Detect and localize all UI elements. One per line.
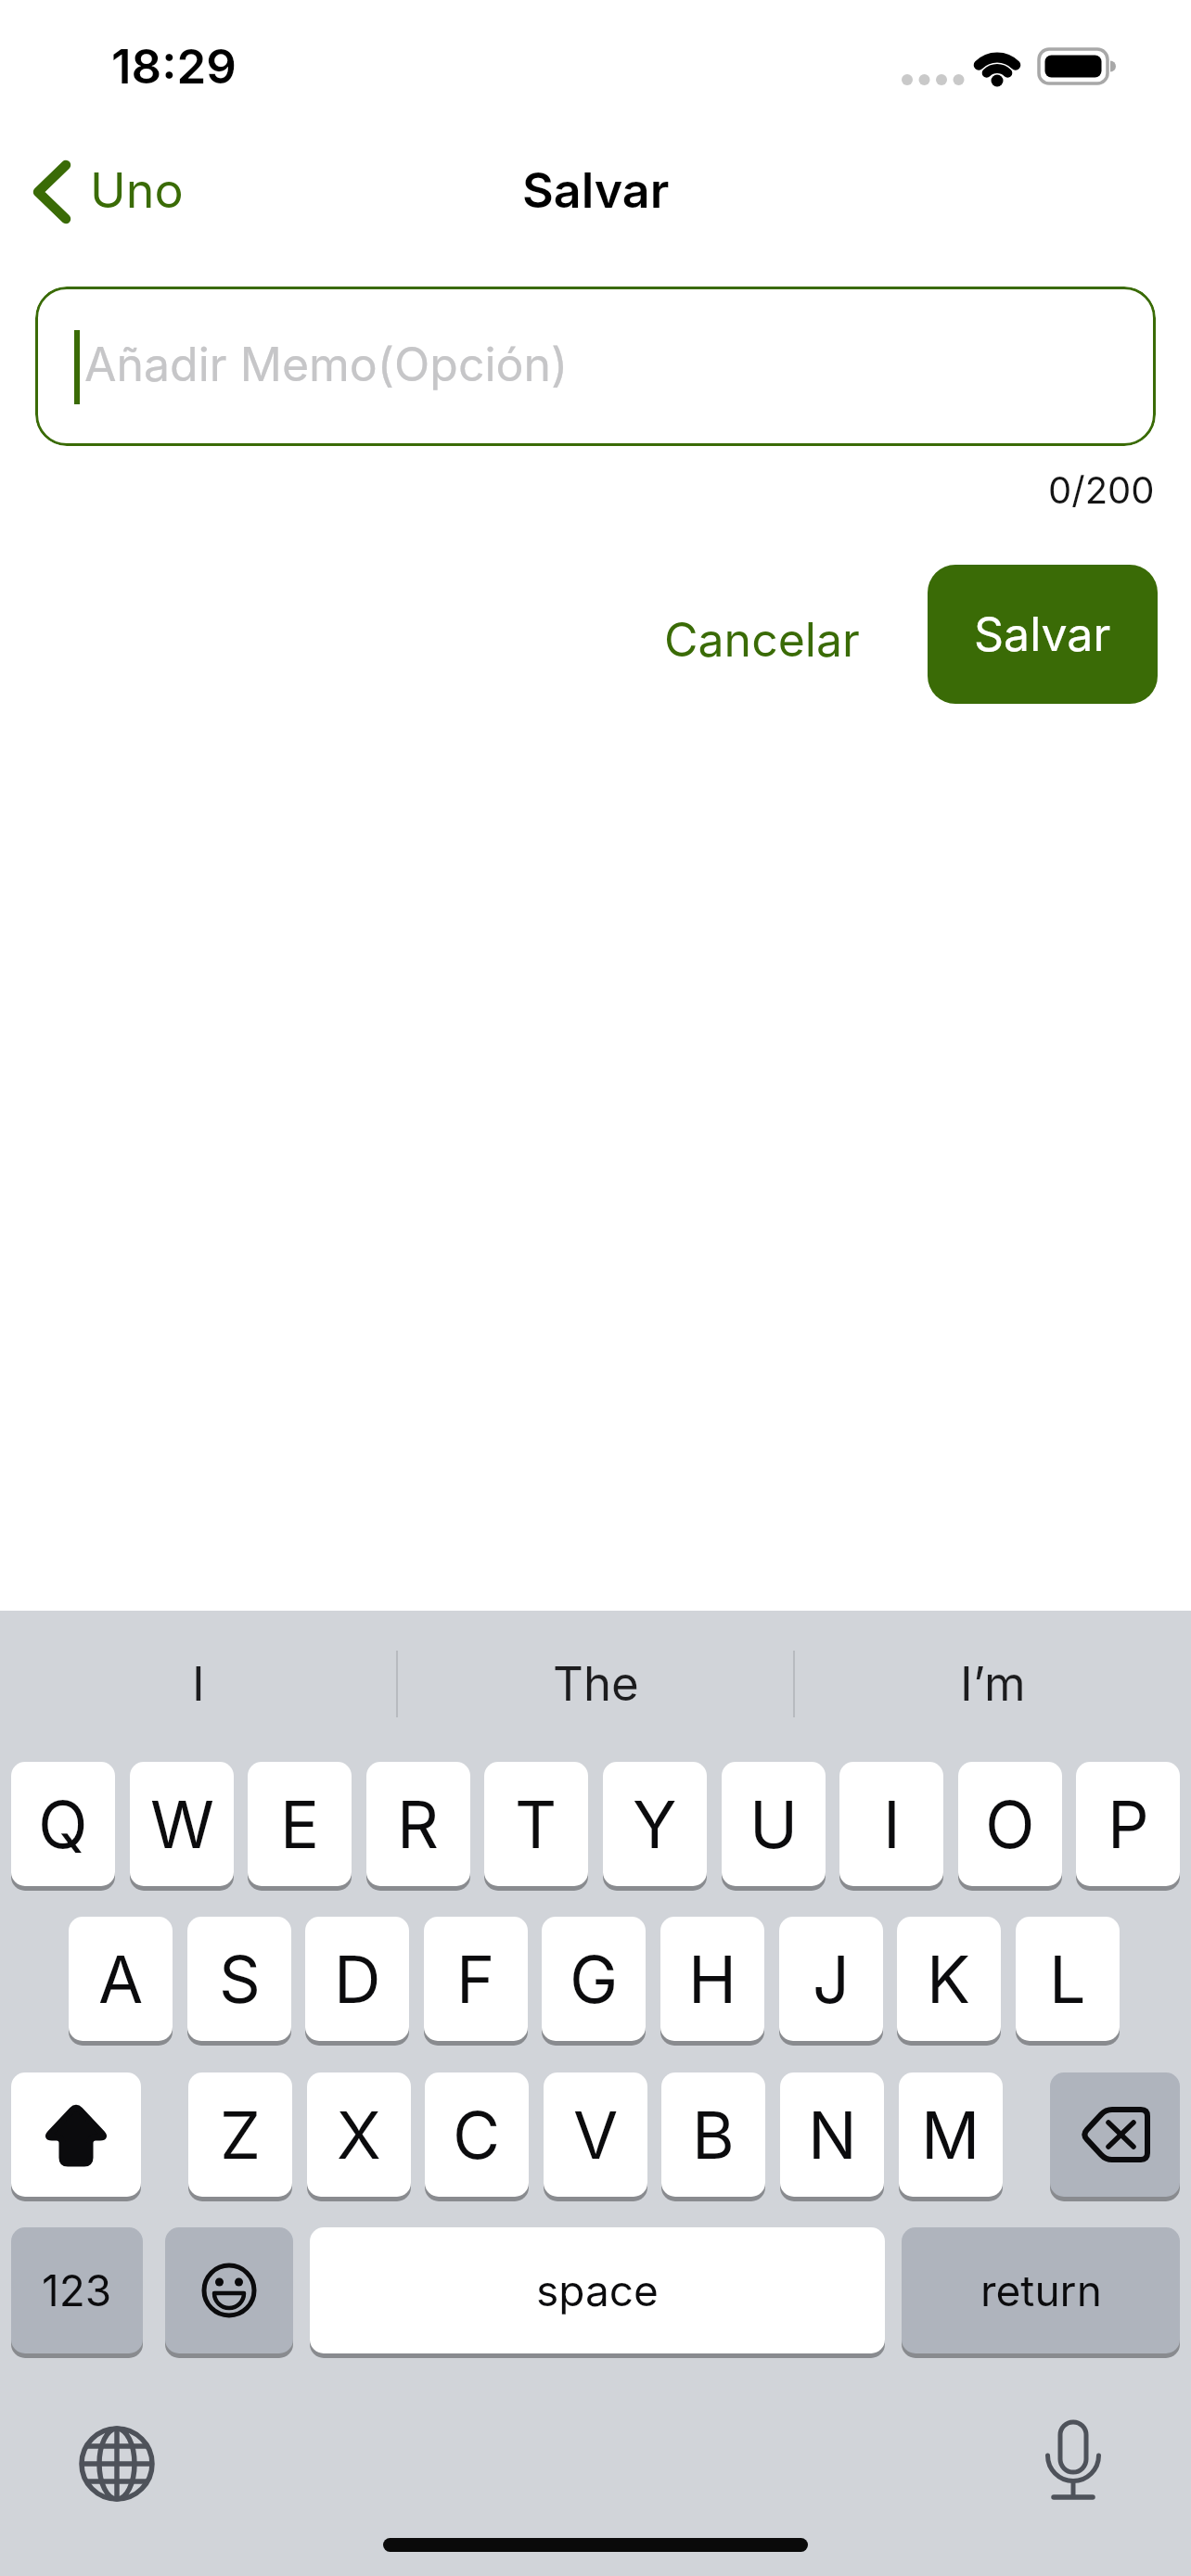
button[interactable]: N xyxy=(780,2072,884,2197)
staticText: Uno xyxy=(90,161,184,220)
button[interactable]: D xyxy=(305,1917,409,2041)
button[interactable]: I’m xyxy=(794,1651,1191,1716)
button[interactable]: Y xyxy=(603,1762,707,1886)
staticText: 18:29 xyxy=(111,38,237,96)
staticText: Cancelar xyxy=(664,612,860,668)
button[interactable] xyxy=(1050,2072,1180,2197)
button[interactable] xyxy=(11,2072,141,2197)
staticText: G xyxy=(570,1940,619,2019)
staticText: X xyxy=(337,2096,381,2174)
staticText: The xyxy=(553,1655,639,1713)
staticText: 0/200 xyxy=(1048,467,1155,512)
button[interactable]: X xyxy=(307,2072,411,2197)
button[interactable]: W xyxy=(130,1762,234,1886)
staticText: F xyxy=(456,1940,495,2019)
staticText: N xyxy=(808,2096,857,2174)
button[interactable]: G xyxy=(542,1917,646,2041)
staticText: U xyxy=(749,1785,799,1864)
staticText: J xyxy=(813,1940,850,2019)
staticText: K xyxy=(927,1940,971,2019)
button[interactable] xyxy=(35,287,1156,446)
button[interactable]: space xyxy=(310,2227,885,2353)
button[interactable]: A xyxy=(69,1917,173,2041)
staticText: I’m xyxy=(960,1655,1026,1713)
button[interactable] xyxy=(165,2227,293,2353)
button[interactable]: K xyxy=(897,1917,1001,2041)
staticText: A xyxy=(98,1940,144,2019)
button[interactable]: Salvar xyxy=(928,565,1158,704)
staticText: R xyxy=(397,1785,440,1864)
staticText: Salvar xyxy=(522,161,670,220)
staticText: Y xyxy=(633,1785,677,1864)
staticText: W xyxy=(150,1785,214,1864)
button[interactable]: return xyxy=(902,2227,1180,2353)
button[interactable]: S xyxy=(187,1917,291,2041)
staticText: space xyxy=(536,2264,659,2316)
staticText: Añadir Memo(Opción) xyxy=(84,337,569,392)
staticText: D xyxy=(334,1940,381,2019)
button[interactable]: The xyxy=(397,1651,794,1716)
button[interactable]: 123 xyxy=(11,2227,143,2353)
button[interactable]: L xyxy=(1016,1917,1120,2041)
staticText: B xyxy=(692,2096,735,2174)
button[interactable]: C xyxy=(425,2072,529,2197)
button[interactable]: Q xyxy=(11,1762,115,1886)
button[interactable]: R xyxy=(366,1762,470,1886)
button[interactable] xyxy=(28,156,195,230)
button[interactable]: P xyxy=(1076,1762,1180,1886)
button[interactable]: I xyxy=(839,1762,943,1886)
button[interactable]: M xyxy=(899,2072,1003,2197)
button[interactable]: F xyxy=(424,1917,528,2041)
staticText: Salvar xyxy=(974,606,1111,662)
button[interactable]: T xyxy=(484,1762,588,1886)
button[interactable]: H xyxy=(660,1917,764,2041)
button[interactable]: E xyxy=(248,1762,352,1886)
staticText: return xyxy=(980,2264,1102,2316)
staticText: I xyxy=(883,1785,901,1864)
button[interactable]: Cancelar xyxy=(647,601,876,679)
staticText: Z xyxy=(220,2096,262,2174)
staticText: I xyxy=(192,1655,205,1713)
staticText: M xyxy=(921,2096,980,2174)
button[interactable]: O xyxy=(958,1762,1062,1886)
button[interactable]: J xyxy=(779,1917,883,2041)
button[interactable]: Z xyxy=(188,2072,292,2197)
button[interactable]: I xyxy=(0,1651,397,1716)
staticText: O xyxy=(985,1785,1035,1864)
staticText: T xyxy=(515,1785,557,1864)
button[interactable]: U xyxy=(722,1762,826,1886)
button[interactable]: V xyxy=(544,2072,647,2197)
staticText: S xyxy=(219,1940,261,2019)
staticText: V xyxy=(573,2096,619,2174)
staticText: Q xyxy=(38,1785,88,1864)
staticText: 123 xyxy=(42,2264,112,2316)
staticText: H xyxy=(688,1940,737,2019)
button[interactable]: B xyxy=(661,2072,765,2197)
staticText: P xyxy=(1108,1785,1149,1864)
staticText: E xyxy=(280,1785,320,1864)
staticText: L xyxy=(1049,1940,1086,2019)
staticText: C xyxy=(453,2096,501,2174)
